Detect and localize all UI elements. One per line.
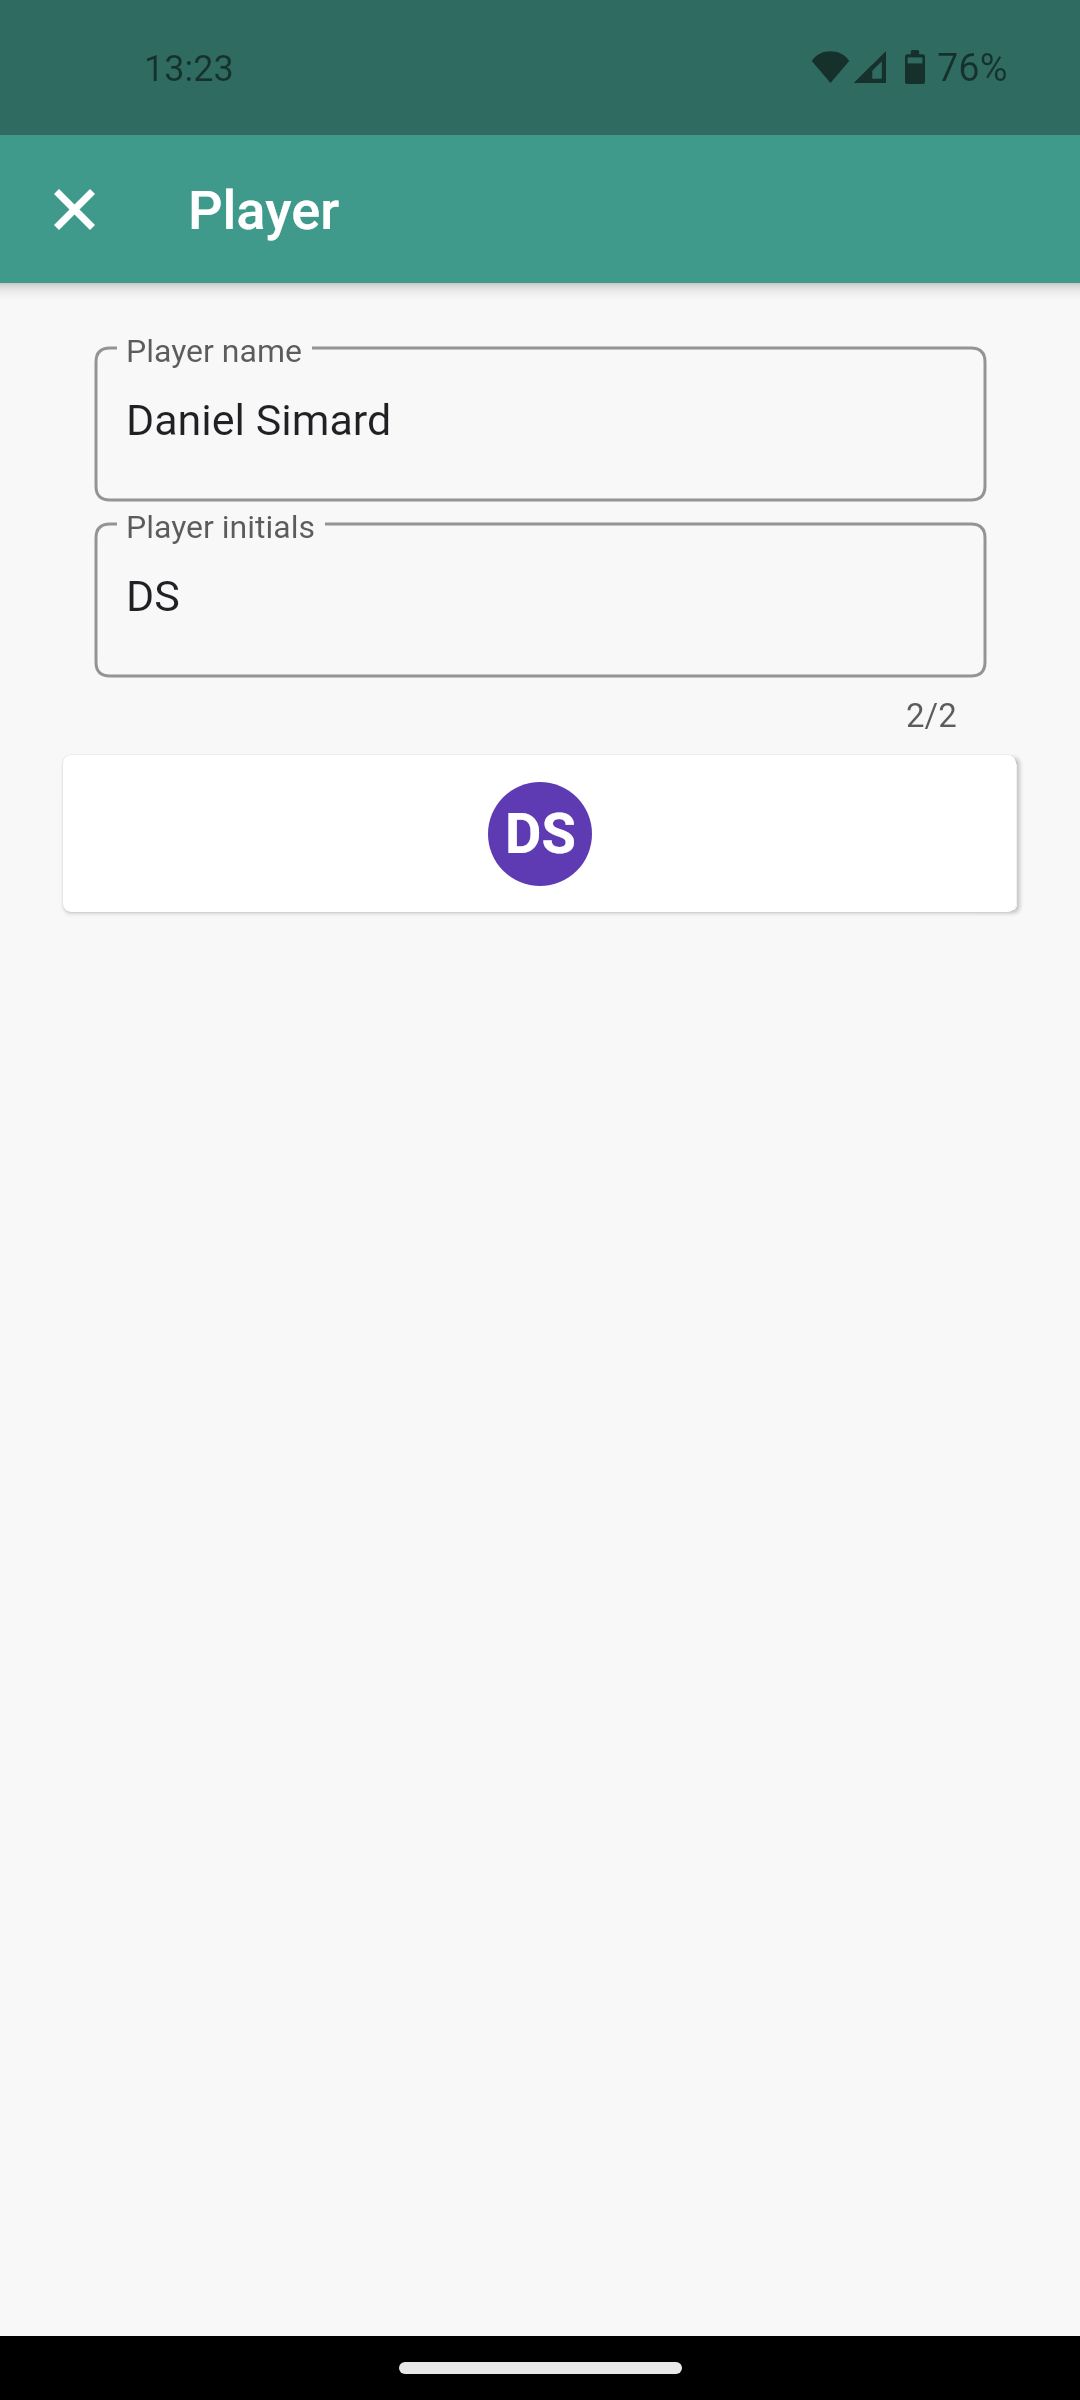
staticText: 76%	[937, 46, 1008, 91]
staticText: Daniel Simard	[126, 395, 392, 445]
staticText: DS	[126, 571, 180, 621]
button[interactable]: Close	[29, 164, 119, 254]
staticText: Player name	[126, 332, 302, 370]
staticText: 2/2	[906, 696, 957, 735]
button[interactable]: DS	[63, 755, 1016, 912]
button[interactable]: Player initials	[96, 524, 985, 676]
button[interactable]: Player name	[96, 348, 985, 500]
staticText: 13:23	[144, 48, 234, 90]
staticText: DS	[505, 801, 576, 867]
staticText: Player initials	[126, 508, 316, 546]
staticText: Player	[188, 179, 340, 242]
